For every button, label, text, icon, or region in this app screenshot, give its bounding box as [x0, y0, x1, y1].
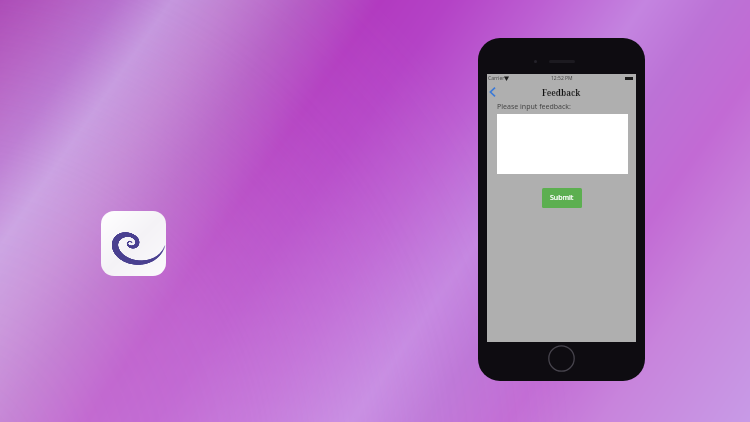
staticText: Feedback [542, 87, 581, 98]
staticText: 12:52 PM [551, 75, 573, 82]
button[interactable]: App icon [101, 211, 166, 276]
button[interactable]: Back [488, 87, 496, 97]
staticText: Please input feedback: [497, 102, 571, 112]
button[interactable]: Submit [542, 188, 582, 208]
staticText: Submit [550, 193, 574, 203]
staticText: Carrier [488, 75, 505, 82]
